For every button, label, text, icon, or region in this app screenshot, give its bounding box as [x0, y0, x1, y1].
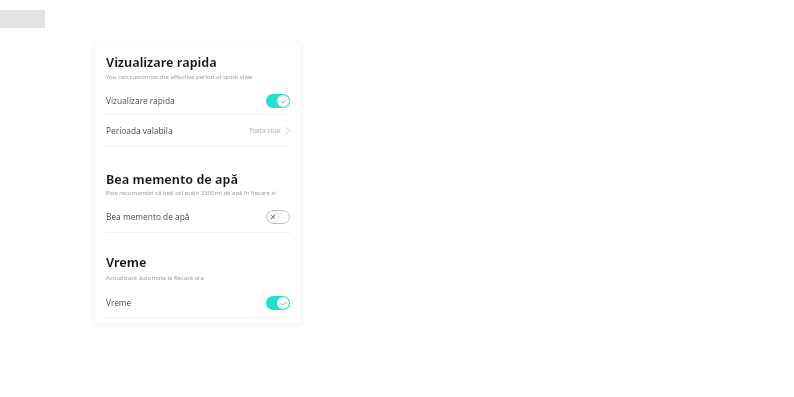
staticText: Vreme: [106, 254, 147, 271]
staticText: You can customize the effective period o…: [106, 73, 253, 81]
button[interactable]: Vizualizare rapida: [95, 86, 300, 115]
staticText: Vreme: [106, 297, 132, 308]
button[interactable]: Bea memento de apă toggle, off: [266, 210, 290, 224]
button[interactable]: Perioada valabila: [95, 116, 300, 145]
staticText: Este recomandat să beți cel puțin 2300ml…: [106, 189, 276, 197]
staticText: Toata ziua: [249, 126, 280, 135]
button[interactable]: Bea memento de apă: [95, 202, 300, 231]
staticText: Perioada valabila: [106, 125, 173, 136]
staticText: Bea memento de apă: [106, 211, 190, 222]
staticText: Vizualizare rapida: [106, 54, 217, 71]
button[interactable]: Vreme: [95, 288, 300, 317]
button[interactable]: Vizualizare rapida toggle, on: [266, 94, 290, 108]
button[interactable]: Vreme toggle, on: [266, 296, 290, 310]
staticText: Actualizare automata la fiecare ora: [106, 274, 204, 282]
staticText: Bea memento de apă: [106, 171, 238, 188]
staticText: Vizualizare rapida: [106, 95, 175, 106]
